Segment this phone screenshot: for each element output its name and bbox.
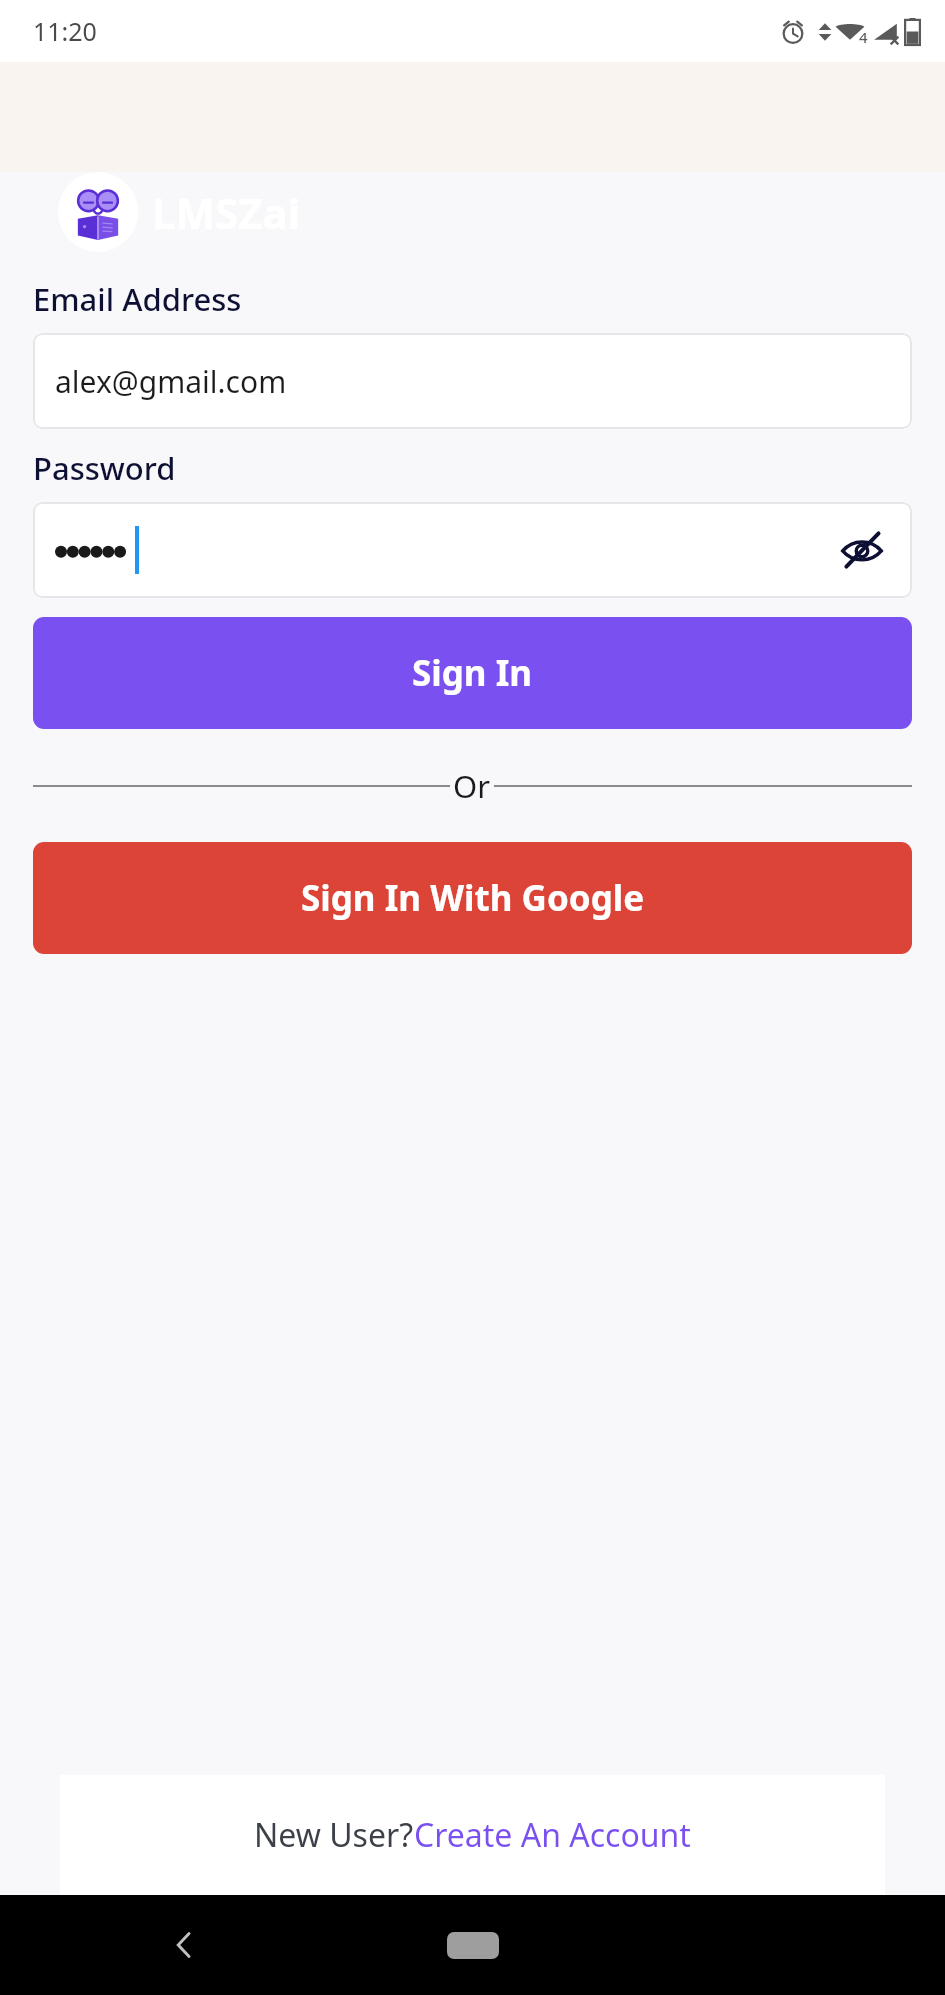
button[interactable]: Sign In <box>33 617 912 729</box>
staticText: Or <box>453 765 491 807</box>
button[interactable]: Sign In With Google <box>33 842 912 954</box>
staticText: Sign In <box>412 649 533 697</box>
staticText: Sign In With Google <box>301 874 645 922</box>
button[interactable]: Hide password <box>834 522 890 578</box>
staticText: Password <box>33 447 176 489</box>
staticText: 11:20 <box>33 14 97 48</box>
button[interactable]: Back <box>155 1915 215 1975</box>
button[interactable]: alex@gmail.com <box>33 333 912 429</box>
staticText: alex@gmail.com <box>55 361 287 402</box>
staticText: 4 <box>859 27 868 47</box>
staticText: New User? <box>254 1813 414 1857</box>
button[interactable]: Hide password <box>33 502 912 598</box>
staticText: Create An Account <box>414 1813 691 1857</box>
staticText: Email Address <box>33 278 242 320</box>
button[interactable]: New User? <box>254 1813 691 1857</box>
button[interactable]: Home <box>433 1915 513 1975</box>
